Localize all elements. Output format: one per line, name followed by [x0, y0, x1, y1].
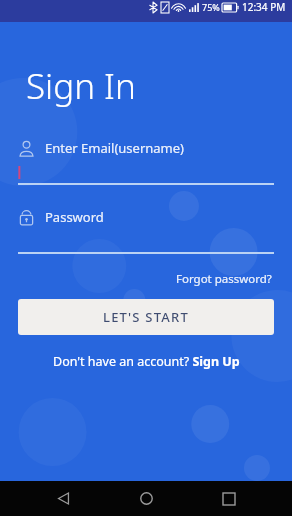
button[interactable]: Back — [43, 481, 83, 516]
staticText: Password — [45, 208, 104, 226]
staticText: Forgot password? — [176, 271, 272, 287]
button[interactable]: Home — [126, 481, 166, 516]
staticText: LET'S START — [103, 308, 189, 326]
button[interactable]: Forgot password? — [173, 268, 275, 290]
staticText: Don't have an account? Sign Up — [53, 353, 240, 370]
staticText: Sign In — [26, 62, 136, 110]
staticText: 75% — [202, 1, 220, 13]
button[interactable]: LET'S START — [18, 299, 274, 335]
staticText: 12:34 PM — [242, 0, 286, 14]
button[interactable]: Recent apps — [209, 481, 249, 516]
button[interactable]: Don't have an account? Sign Up — [49, 350, 244, 373]
staticText: Enter Email(username) — [45, 139, 184, 157]
